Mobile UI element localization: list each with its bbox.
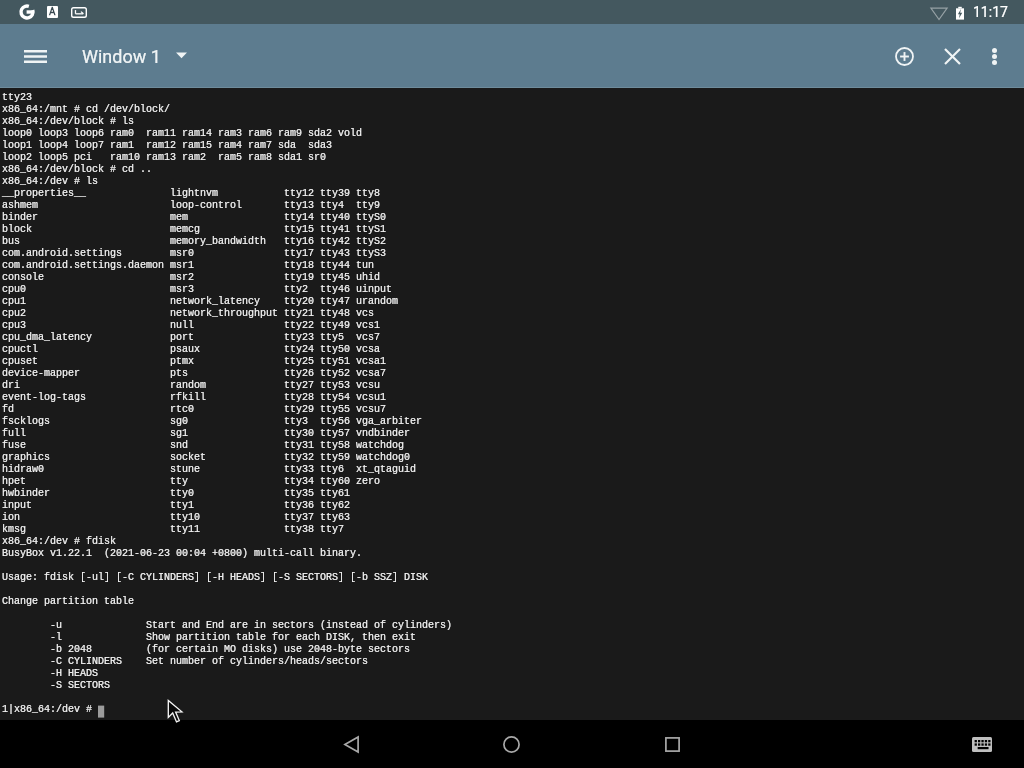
button[interactable]: More options	[970, 32, 1018, 80]
staticText: tty23 x86_64:/mnt # cd /dev/block/ x86_6…	[2, 91, 453, 715]
button[interactable]: Terminal output	[0, 88, 1024, 720]
staticText: A	[49, 6, 56, 18]
button[interactable]: Home	[487, 720, 535, 768]
button[interactable]: New window	[880, 32, 928, 80]
staticText: 11:17	[973, 4, 1008, 20]
staticText: Window 1	[82, 46, 161, 67]
button[interactable]: Recent apps	[648, 720, 696, 768]
button[interactable]: Open navigation drawer	[0, 24, 64, 88]
button[interactable]: Back	[327, 720, 375, 768]
button[interactable]: Switch keyboard	[958, 720, 1006, 768]
button[interactable]: Window 1	[82, 24, 187, 88]
button[interactable]: Close window	[928, 32, 976, 80]
